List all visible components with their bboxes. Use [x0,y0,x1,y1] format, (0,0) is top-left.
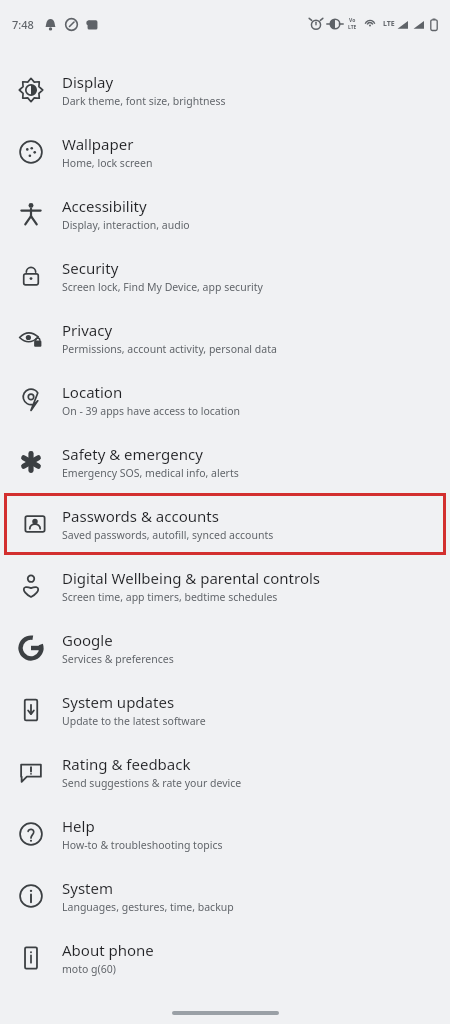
button[interactable]: Privacy [0,307,450,369]
staticText: System updates [62,692,175,712]
staticText: System [62,878,113,898]
button[interactable]: Location [0,369,450,431]
staticText: Digital Wellbeing & parental controls [62,568,321,588]
button[interactable]: Passwords & accounts [7,496,443,552]
staticText: Emergency SOS, medical info, alerts [62,466,239,480]
staticText: Vo [349,17,356,24]
button[interactable]: Wallpaper [0,121,450,183]
button[interactable]: Google [0,617,450,679]
staticText: Screen time, app timers, bedtime schedul… [62,590,278,604]
staticText: How-to & troubleshooting topics [62,838,223,852]
button[interactable]: Rating & feedback [0,741,450,803]
staticText: Services & preferences [62,652,174,666]
staticText: Help [62,816,95,836]
staticText: Location [62,382,123,402]
staticText: Wallpaper [62,134,134,154]
staticText: Update to the latest software [62,714,206,728]
staticText: Languages, gestures, time, backup [62,900,234,914]
button[interactable]: System [0,865,450,927]
button[interactable]: Digital Wellbeing & parental controls [0,555,450,617]
staticText: LTE [383,19,395,29]
staticText: LTE [348,24,357,31]
staticText: Screen lock, Find My Device, app securit… [62,280,263,294]
staticText: On - 39 apps have access to location [62,404,241,418]
staticText: Security [62,258,119,278]
button[interactable]: Help [0,803,450,865]
staticText: Accessibility [62,196,147,216]
staticText: moto g(60) [62,962,116,976]
staticText: Privacy [62,320,113,340]
staticText: 7:48 [12,17,34,32]
staticText: Safety & emergency [62,444,203,464]
staticText: Permissions, account activity, personal … [62,342,277,356]
button[interactable]: Display [0,59,450,121]
staticText: Display, interaction, audio [62,218,190,232]
staticText: Passwords & accounts [62,506,219,526]
staticText: Rating & feedback [62,754,191,774]
staticText: Google [62,630,113,650]
staticText: Display [62,72,114,92]
staticText: About phone [62,940,154,960]
button[interactable]: System updates [0,679,450,741]
button[interactable]: Safety & emergency [0,431,450,493]
button[interactable]: About phone [0,927,450,989]
staticText: Send suggestions & rate your device [62,776,242,790]
staticText: Dark theme, font size, brightness [62,94,226,108]
staticText: Saved passwords, autofill, synced accoun… [62,528,274,542]
button[interactable]: Accessibility [0,183,450,245]
button[interactable]: Security [0,245,450,307]
staticText: Home, lock screen [62,156,153,170]
